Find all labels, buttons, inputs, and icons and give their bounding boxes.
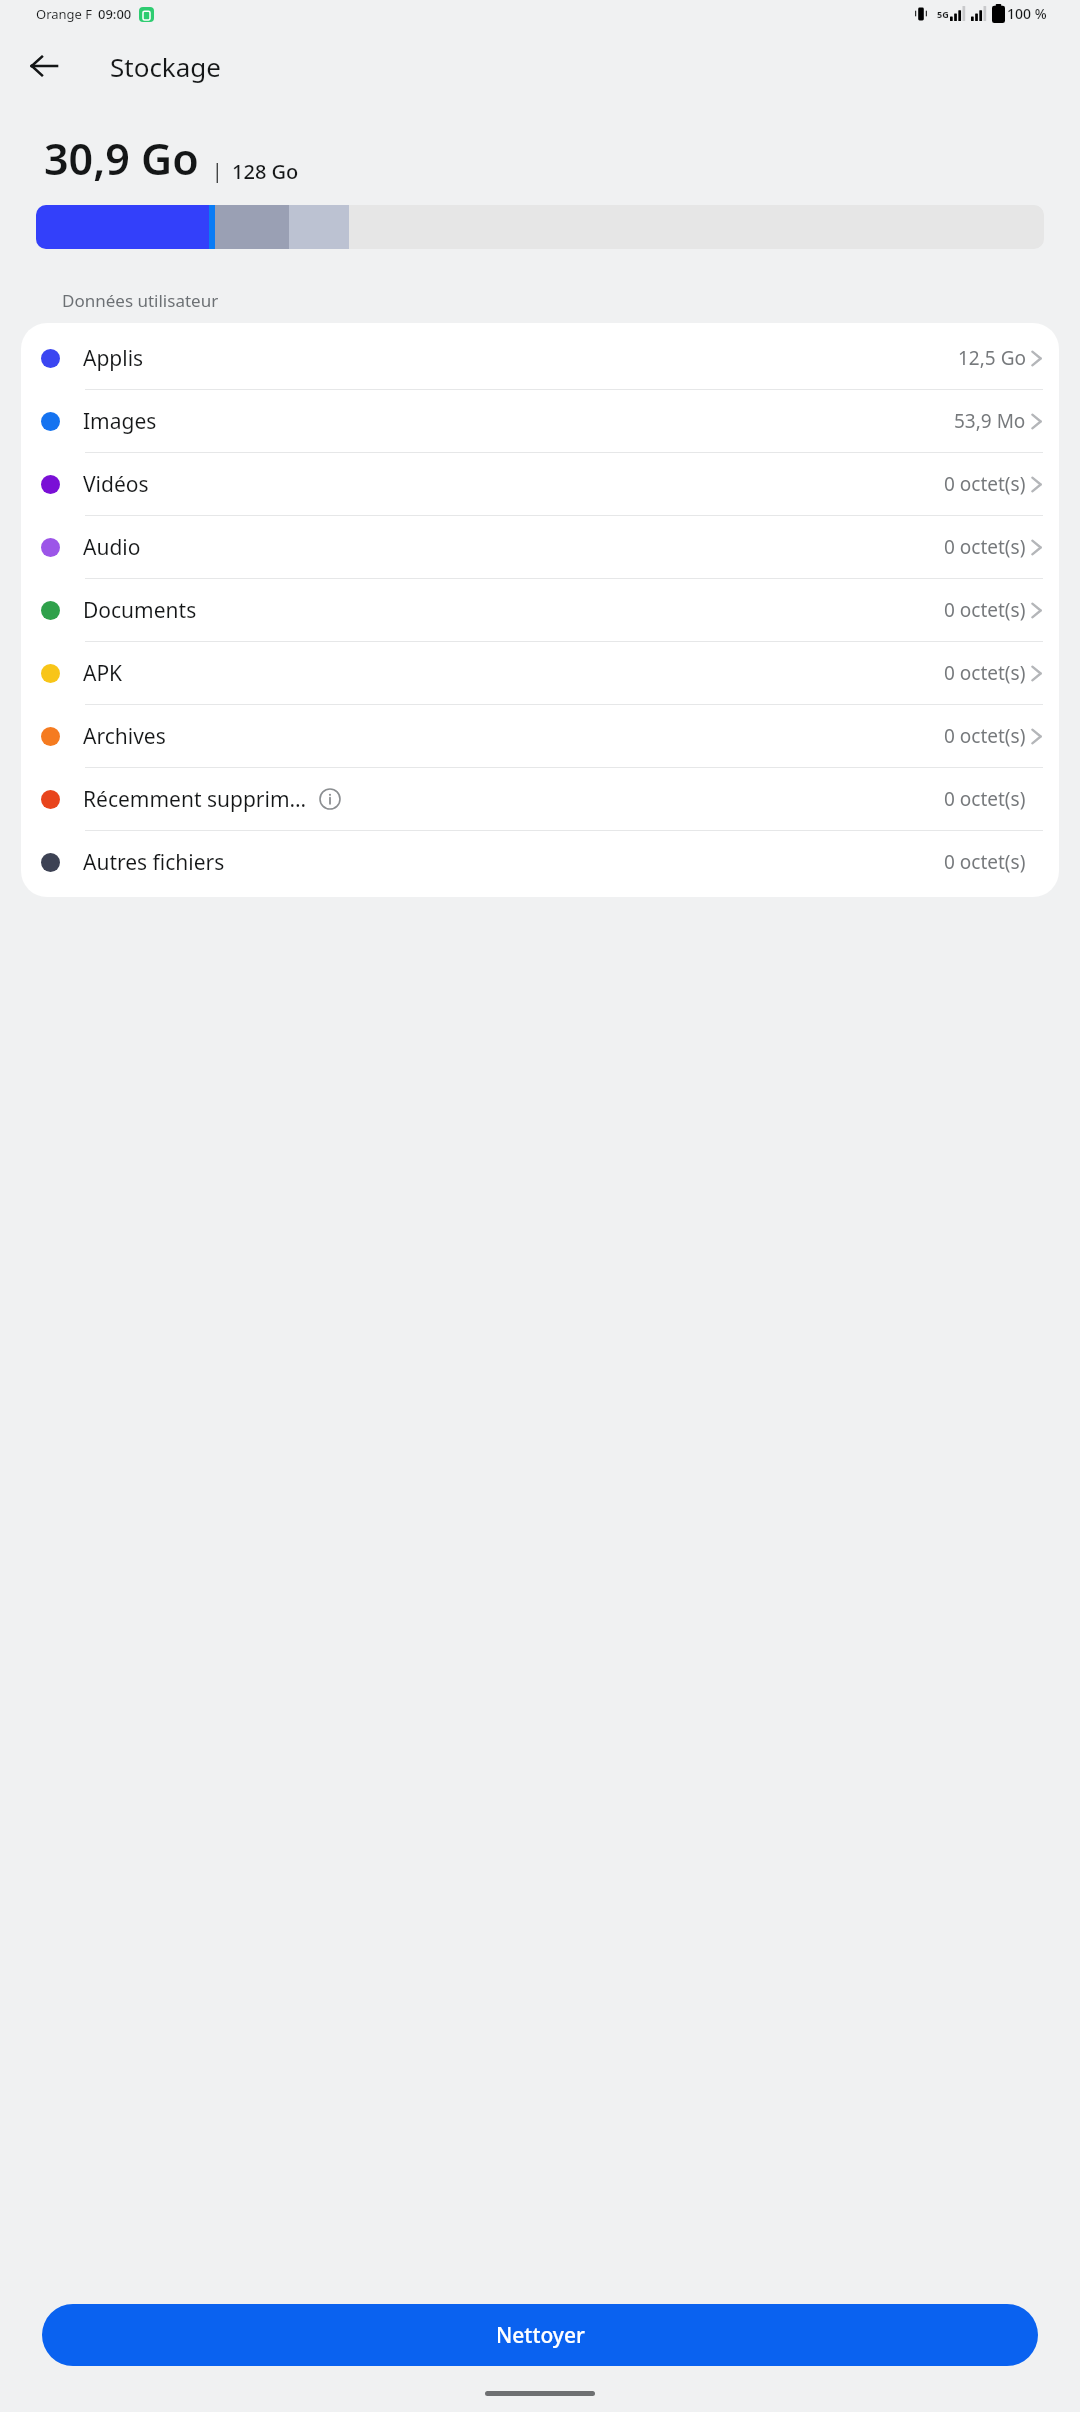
button[interactable]: Récemment supprim… (21, 768, 1059, 830)
button[interactable]: Documents (21, 579, 1059, 641)
staticText: Applis (83, 344, 144, 373)
staticText: 0 octet(s) (944, 534, 1026, 560)
button[interactable]: Autres fichiers (21, 831, 1059, 893)
staticText: Images (83, 407, 157, 436)
staticText: 100 % (1007, 4, 1047, 23)
other: Informations (319, 788, 341, 810)
staticText: | (212, 158, 223, 184)
staticText: Orange F (36, 5, 93, 23)
staticText: 0 octet(s) (944, 723, 1026, 749)
staticText: Nettoyer (496, 2321, 585, 2350)
button[interactable]: Audio (21, 516, 1059, 578)
staticText: Stockage (110, 49, 221, 84)
staticText: 30,9 Go (44, 129, 199, 188)
staticText: 5G (937, 8, 949, 20)
staticText: Documents (83, 596, 197, 625)
button[interactable]: Archives (21, 705, 1059, 767)
button[interactable]: Applis (21, 327, 1059, 389)
staticText: Audio (83, 533, 141, 562)
button[interactable]: APK (21, 642, 1059, 704)
staticText: 12,5 Go (958, 345, 1026, 371)
staticText: 0 octet(s) (944, 597, 1026, 623)
staticText: 0 octet(s) (944, 849, 1026, 875)
button[interactable]: Images (21, 390, 1059, 452)
staticText: Autres fichiers (83, 848, 225, 877)
staticText: Récemment supprim… (83, 785, 307, 814)
button[interactable]: Nettoyer (42, 2304, 1038, 2366)
staticText: 128 Go (232, 158, 299, 185)
staticText: Vidéos (83, 470, 149, 499)
staticText: 0 octet(s) (944, 660, 1026, 686)
button[interactable]: Retour (16, 38, 72, 94)
staticText: 53,9 Mo (954, 408, 1026, 434)
staticText: 0 octet(s) (944, 786, 1026, 812)
button[interactable]: Vidéos (21, 453, 1059, 515)
staticText: 09:00 (98, 5, 132, 23)
staticText: 0 octet(s) (944, 471, 1026, 497)
staticText: APK (83, 659, 123, 688)
staticText: Archives (83, 722, 166, 751)
staticText: Données utilisateur (62, 289, 219, 312)
